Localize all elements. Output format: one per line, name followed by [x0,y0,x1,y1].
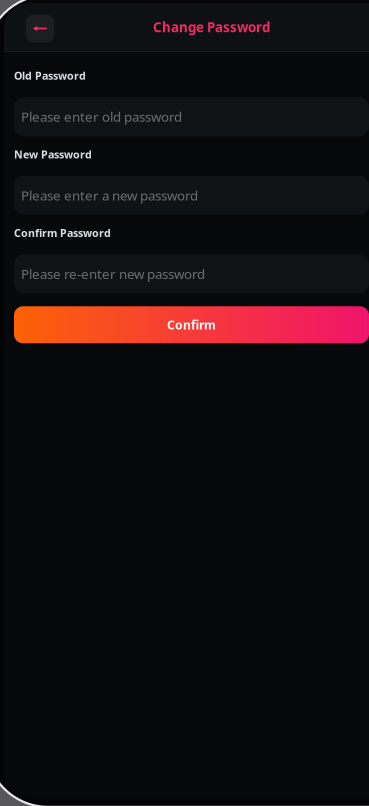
button[interactable]: Please enter old password [4,97,369,136]
staticText: Confirm [167,317,216,333]
staticText: Old Password [14,69,86,83]
staticText: Please enter a new password [21,186,198,204]
staticText: New Password [14,147,92,161]
staticText: Change Password [153,18,270,36]
button[interactable]: Confirm [4,306,369,343]
staticText: Please re-enter new password [21,265,205,283]
button[interactable]: Back [4,11,54,42]
button[interactable]: Please enter a new password [4,176,369,215]
staticText: Please enter old password [21,108,182,125]
button[interactable]: Please re-enter new password [4,254,369,293]
staticText: Confirm Password [14,226,111,240]
